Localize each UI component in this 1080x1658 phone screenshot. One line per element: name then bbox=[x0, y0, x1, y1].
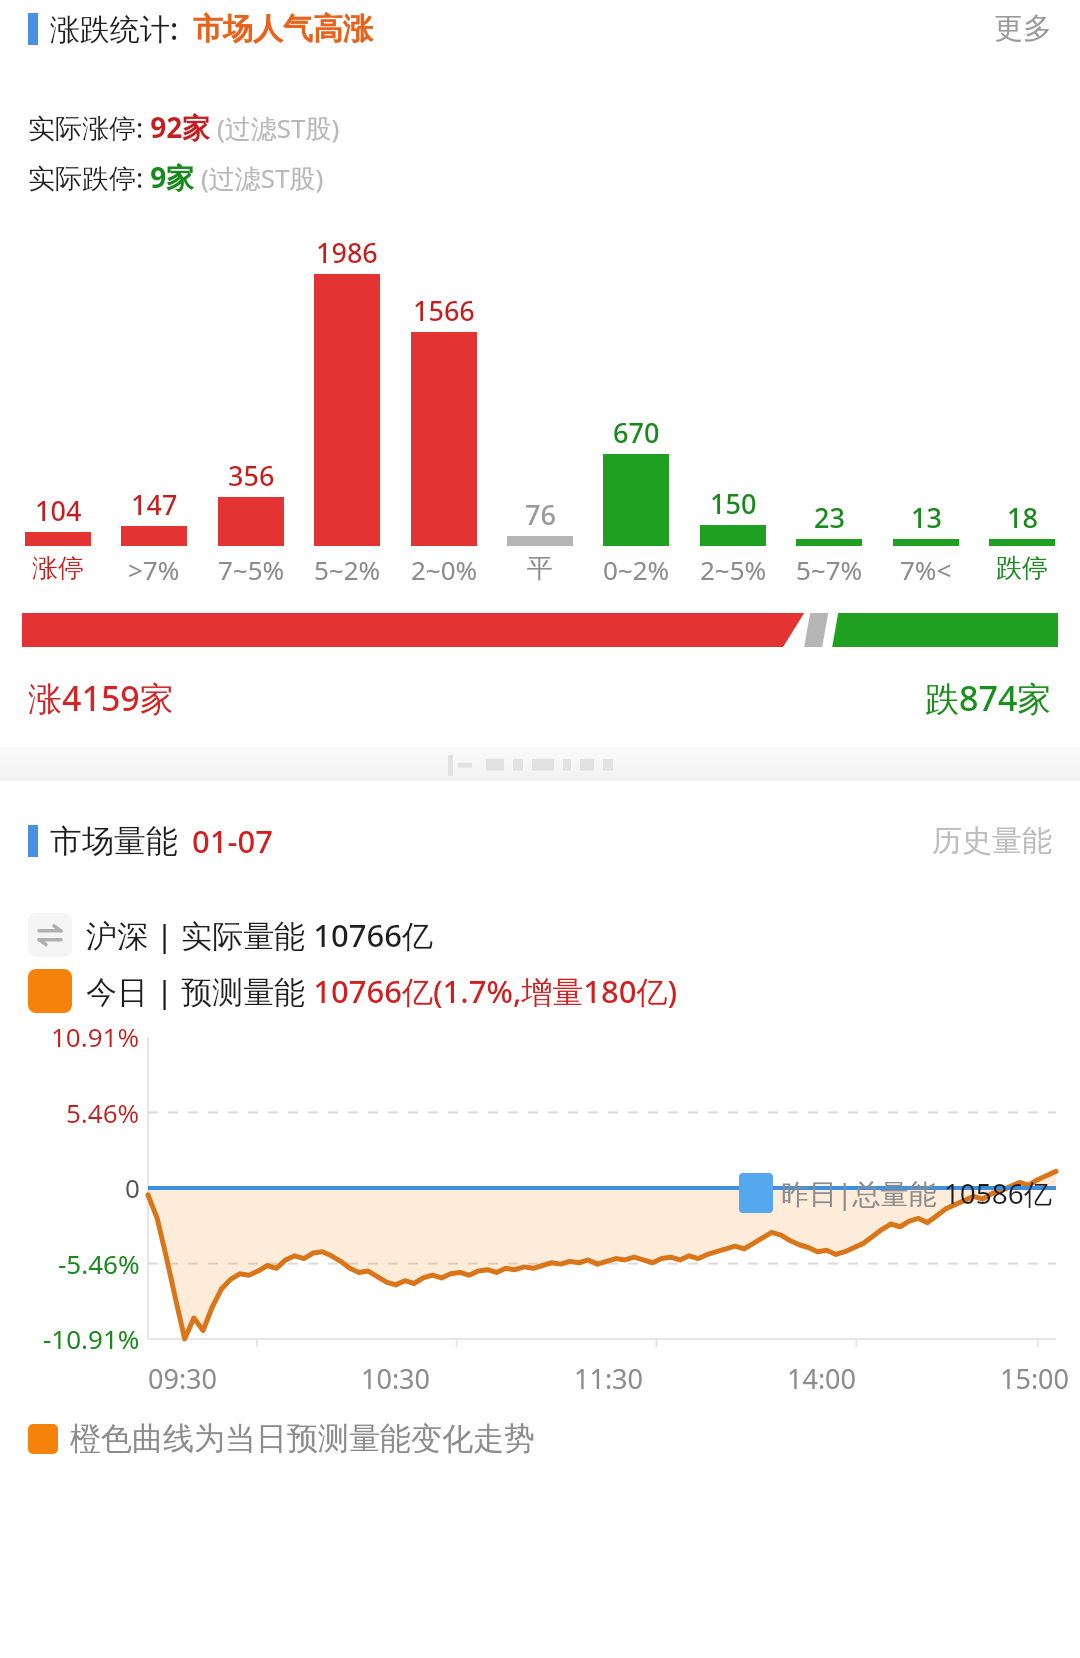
staticText: 10.91% bbox=[51, 1019, 140, 1054]
staticText: 0~2% bbox=[603, 552, 670, 587]
staticText: 11:30 bbox=[574, 1360, 644, 1397]
staticText: 市场量能 bbox=[50, 821, 178, 861]
staticText: 670 bbox=[613, 414, 660, 451]
button[interactable]: 150 bbox=[699, 485, 767, 546]
button[interactable] bbox=[22, 613, 1058, 647]
button[interactable]: 橙色曲线为当日预测量能变化走势 bbox=[28, 1419, 1080, 1458]
other: 切换市场 bbox=[28, 913, 72, 957]
staticText: 昨日|总量能 10586亿 bbox=[781, 1174, 1052, 1212]
staticText: 更多 bbox=[994, 10, 1052, 47]
staticText: 18 bbox=[1007, 499, 1038, 536]
button[interactable]: 147 bbox=[120, 486, 188, 546]
staticText: 5~7% bbox=[796, 552, 863, 587]
staticText: 10:30 bbox=[361, 1360, 431, 1397]
button[interactable]: 1566 bbox=[410, 292, 478, 546]
staticText: 01-07 bbox=[192, 820, 273, 862]
button[interactable]: 13 bbox=[892, 499, 960, 546]
staticText: 356 bbox=[228, 457, 275, 494]
button[interactable]: 104 bbox=[24, 492, 92, 546]
staticText: 5.46% bbox=[66, 1095, 140, 1130]
staticText: 1566 bbox=[413, 292, 475, 329]
staticText: 150 bbox=[710, 485, 757, 522]
button[interactable]: 76 bbox=[506, 496, 574, 546]
staticText: 市场人气高涨 bbox=[193, 10, 373, 48]
button[interactable]: 356 bbox=[217, 457, 285, 546]
staticText: 平 bbox=[527, 552, 553, 585]
staticText: 13 bbox=[911, 499, 942, 536]
staticText: 实际跌停: 9家 (过滤ST股) bbox=[28, 158, 324, 196]
staticText: 橙色曲线为当日预测量能变化走势 bbox=[70, 1419, 535, 1458]
staticText: 14:00 bbox=[787, 1360, 857, 1397]
staticText: 104 bbox=[35, 492, 82, 529]
staticText: 2~5% bbox=[700, 552, 767, 587]
staticText: 历史量能 bbox=[932, 822, 1052, 860]
staticText: 涨4159家 bbox=[28, 675, 174, 721]
staticText: 147 bbox=[131, 486, 178, 523]
button[interactable]: 23 bbox=[795, 499, 863, 546]
staticText: 7~5% bbox=[218, 552, 285, 587]
staticText: 09:30 bbox=[148, 1360, 218, 1397]
staticText: 1986 bbox=[316, 234, 378, 271]
button[interactable]: 18 bbox=[988, 499, 1056, 546]
staticText: 涨停 bbox=[32, 552, 84, 585]
staticText: 15:00 bbox=[1000, 1360, 1070, 1397]
staticText: 7%< bbox=[900, 552, 952, 587]
button[interactable]: 切换市场 bbox=[28, 913, 1080, 957]
staticText: 实际涨停: 92家 (过滤ST股) bbox=[28, 108, 340, 146]
button[interactable]: 更多 bbox=[986, 4, 1060, 53]
staticText: 今日 | 预测量能 10766亿(1.7%,增量180亿) bbox=[86, 970, 678, 1012]
staticText: 沪深 | 实际量能 10766亿 bbox=[86, 914, 433, 956]
button[interactable]: 昨日|总量能 10586亿 bbox=[739, 1173, 1052, 1213]
staticText: 跌874家 bbox=[925, 675, 1052, 721]
staticText: 76 bbox=[525, 496, 556, 533]
staticText: 涨跌统计: bbox=[50, 8, 179, 49]
button[interactable]: 今日 | 预测量能 10766亿(1.7%,增量180亿) bbox=[28, 969, 1080, 1013]
button[interactable]: 1986 bbox=[313, 234, 381, 546]
staticText: >7% bbox=[128, 552, 180, 587]
button[interactable]: 670 bbox=[602, 414, 670, 546]
button[interactable]: 历史量能 bbox=[924, 816, 1060, 866]
staticText: -5.46% bbox=[58, 1246, 140, 1281]
staticText: 5~2% bbox=[314, 552, 381, 587]
staticText: 跌停 bbox=[996, 552, 1048, 585]
staticText: 0 bbox=[125, 1170, 140, 1205]
staticText: 2~0% bbox=[411, 552, 478, 587]
staticText: -10.91% bbox=[43, 1321, 140, 1356]
staticText: 23 bbox=[814, 499, 845, 536]
